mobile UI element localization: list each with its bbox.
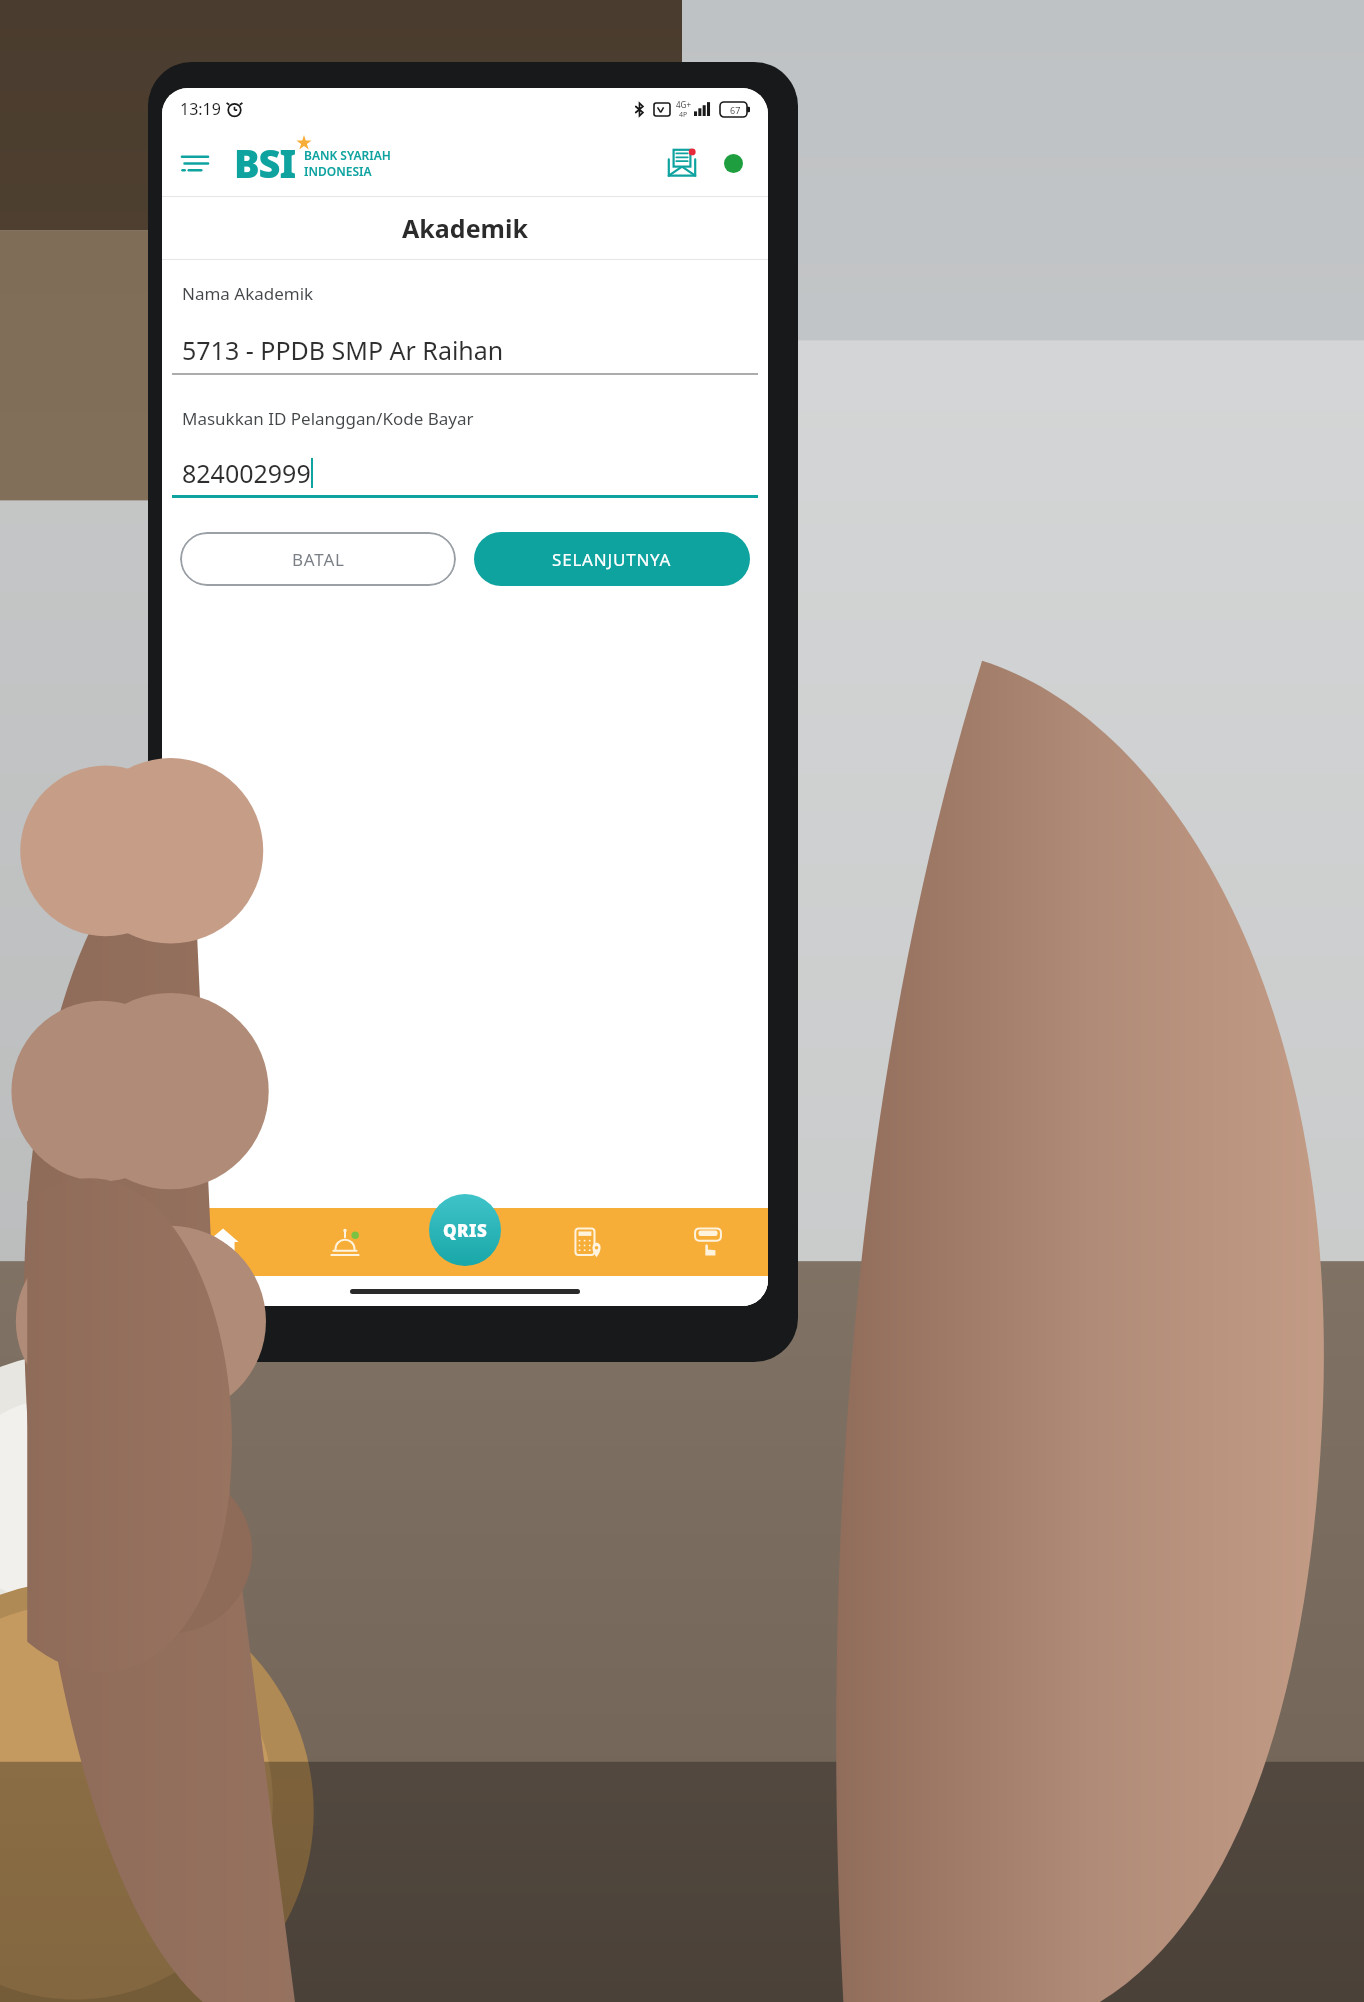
button[interactable]: Home — [162, 1208, 284, 1276]
staticText: BATAL — [292, 548, 345, 571]
button[interactable]: BSI Care — [647, 1208, 768, 1276]
button[interactable]: 824002999 — [172, 456, 758, 498]
staticText: INDONESIA — [304, 163, 372, 179]
button[interactable]: Status — [718, 148, 748, 178]
staticText: 4G+ — [676, 99, 691, 110]
staticText: Masukkan ID Pelanggan/Kode Bayar — [182, 407, 474, 430]
staticText: 5713 - PPDB SMP Ar Raihan — [182, 333, 504, 367]
button[interactable]: Inbox — [660, 141, 704, 185]
staticText: 13:19 — [180, 98, 221, 120]
staticText: Akademik — [402, 211, 528, 245]
button[interactable]: SELANJUTNYA — [474, 532, 750, 586]
staticText: 4P — [679, 110, 688, 120]
staticText: BANK SYARIAH — [304, 147, 391, 163]
button[interactable]: Lokasi ATM — [526, 1208, 647, 1276]
staticText: 67 — [730, 104, 741, 116]
button[interactable]: BATAL — [180, 532, 456, 586]
staticText: Nama Akademik — [182, 282, 314, 305]
staticText: BSI — [234, 137, 296, 189]
button[interactable]: 5713 - PPDB SMP Ar Raihan — [172, 333, 758, 375]
staticText: QRIS — [443, 1219, 488, 1242]
button[interactable]: Sholat — [284, 1208, 405, 1276]
staticText: 824002999 — [182, 456, 311, 490]
staticText: SELANJUTNYA — [552, 548, 672, 571]
button[interactable]: QRIS — [429, 1194, 501, 1266]
button[interactable]: Menu — [182, 143, 222, 183]
